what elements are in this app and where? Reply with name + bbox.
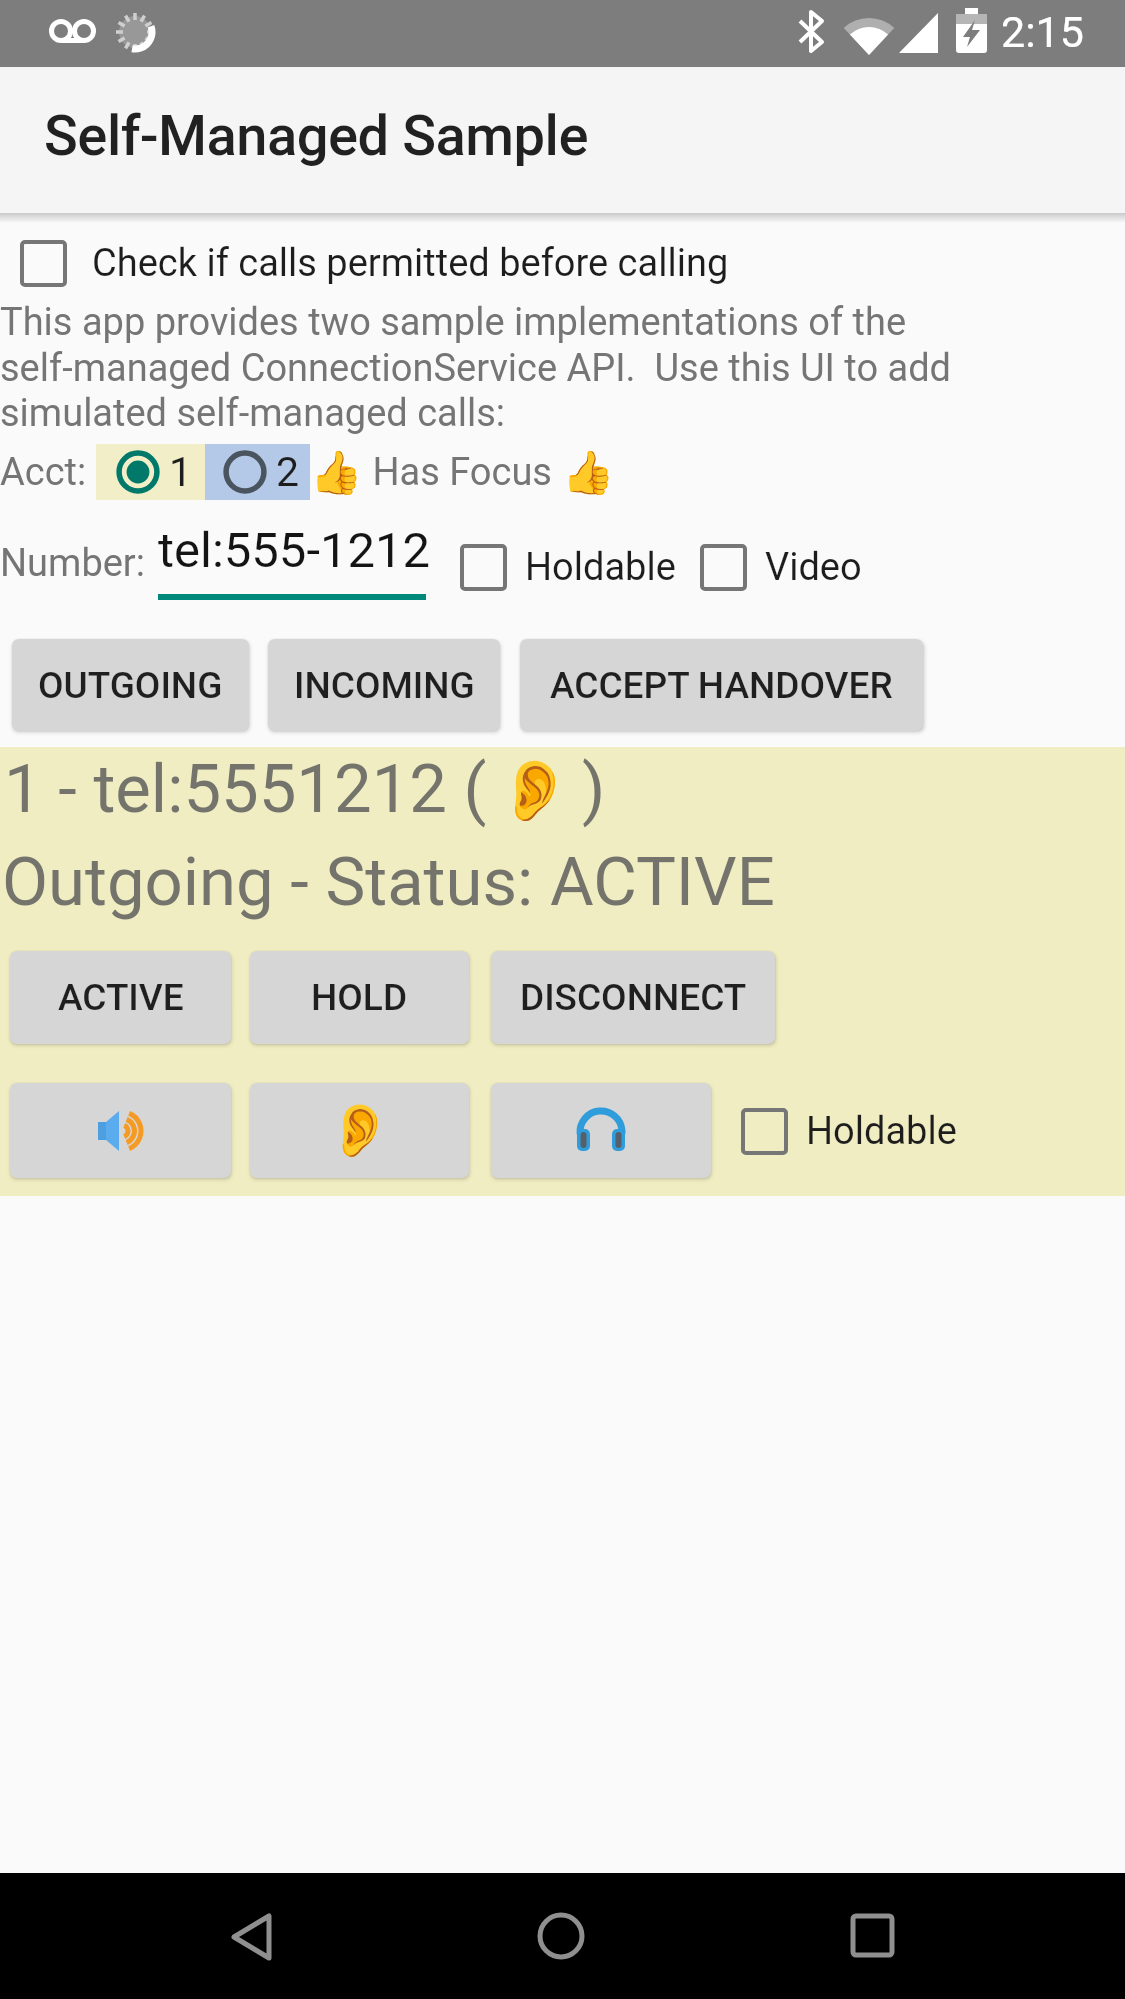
- staticText: OUTGOING: [38, 664, 223, 707]
- staticText: 👍: [310, 448, 363, 497]
- staticText: Outgoing - Status: ACTIVE: [2, 843, 775, 922]
- button[interactable]: 👂: [250, 1083, 469, 1178]
- staticText: 1 - tel:5551212 (: [4, 750, 487, 829]
- staticText: ACTIVE: [58, 976, 184, 1019]
- staticText: Holdable: [525, 545, 676, 590]
- staticText: tel:555-1212: [158, 522, 431, 579]
- staticText: 👍: [562, 448, 615, 497]
- staticText: 2:15: [1001, 7, 1084, 57]
- button[interactable]: Check if calls permitted before calling: [20, 240, 729, 287]
- button[interactable]: Holdable: [460, 544, 676, 591]
- button[interactable]: ACCEPT HANDOVER: [520, 639, 923, 731]
- staticText: This app provides two sample implementat…: [0, 300, 952, 435]
- button[interactable]: ACTIVE: [10, 951, 231, 1044]
- button[interactable]: OUTGOING: [12, 639, 249, 731]
- button[interactable]: [10, 1083, 231, 1178]
- button[interactable]: DISCONNECT: [491, 951, 775, 1044]
- staticText: HOLD: [311, 976, 408, 1019]
- staticText: Self-Managed Sample: [44, 103, 588, 169]
- button[interactable]: Video: [700, 544, 862, 591]
- staticText: 1: [169, 448, 193, 496]
- staticText: ACCEPT HANDOVER: [550, 664, 893, 707]
- staticText: Check if calls permitted before calling: [92, 241, 729, 286]
- button[interactable]: [222, 1903, 282, 1963]
- staticText: Video: [765, 545, 862, 590]
- staticText: 👂: [327, 1100, 392, 1161]
- button[interactable]: 2: [205, 444, 310, 500]
- button[interactable]: [531, 1903, 591, 1963]
- button[interactable]: Holdable: [741, 1108, 957, 1155]
- staticText: Holdable: [806, 1109, 957, 1154]
- staticText: Has Focus: [363, 450, 562, 495]
- staticText: ): [582, 750, 606, 829]
- button[interactable]: tel:555-1212: [158, 522, 431, 579]
- staticText: 2: [276, 448, 300, 496]
- staticText: Acct:: [0, 450, 96, 495]
- staticText: Number:: [0, 541, 145, 586]
- staticText: INCOMING: [294, 664, 475, 707]
- button[interactable]: [491, 1083, 711, 1178]
- staticText: DISCONNECT: [520, 976, 747, 1019]
- button[interactable]: HOLD: [250, 951, 469, 1044]
- button[interactable]: INCOMING: [268, 639, 500, 731]
- button[interactable]: [843, 1903, 903, 1963]
- button[interactable]: 1: [96, 444, 205, 500]
- staticText: 👂: [497, 755, 572, 825]
